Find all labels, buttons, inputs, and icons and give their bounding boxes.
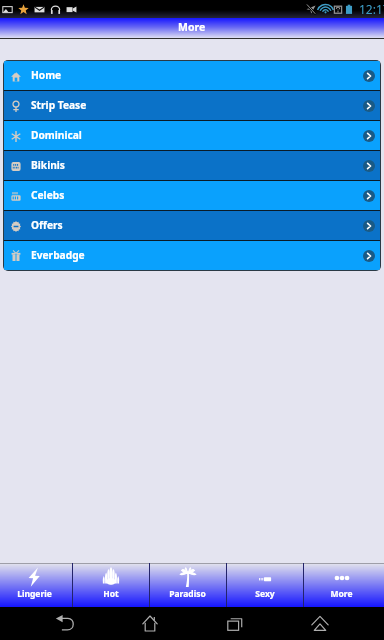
staticText: More	[178, 20, 206, 34]
button[interactable]: Offers	[4, 211, 380, 241]
button[interactable]: Lingerie	[0, 563, 72, 607]
button[interactable]: Sexy	[226, 563, 303, 607]
button[interactable]: Home	[107, 607, 192, 640]
other: Open Everbadge	[363, 250, 375, 262]
button[interactable]: Strip Tease	[4, 91, 380, 121]
staticText: Hot	[103, 588, 119, 600]
staticText: Sexy	[255, 588, 275, 600]
button[interactable]: Home	[4, 61, 380, 91]
staticText: Dominical	[31, 128, 82, 142]
staticText: Everbadge	[31, 248, 85, 262]
staticText: Offers	[31, 218, 63, 232]
other: Open Celebs	[363, 190, 375, 202]
staticText: More	[330, 588, 353, 600]
staticText: Paradiso	[169, 588, 206, 600]
button[interactable]: Everbadge	[4, 241, 380, 270]
staticText: Home	[31, 68, 62, 82]
staticText: Bikinis	[31, 158, 65, 172]
staticText: Strip Tease	[31, 98, 87, 112]
button[interactable]: Paradiso	[149, 563, 226, 607]
other: Open Dominical	[363, 130, 375, 142]
button[interactable]: Dominical	[4, 121, 380, 151]
button[interactable]: More	[303, 563, 380, 607]
staticText: 12:17	[359, 1, 384, 17]
button[interactable]: Recent apps	[192, 607, 277, 640]
button[interactable]: Bikinis	[4, 151, 380, 181]
button[interactable]: Celebs	[4, 181, 380, 211]
other: Open Home	[363, 70, 375, 82]
button[interactable]: Hide keyboard	[277, 607, 362, 640]
other: Open Offers	[363, 220, 375, 232]
button[interactable]: Hot	[72, 563, 149, 607]
other: Open Bikinis	[363, 160, 375, 172]
button[interactable]: Back	[22, 607, 107, 640]
staticText: Lingerie	[17, 588, 52, 600]
other: Open Strip Tease	[363, 100, 375, 112]
staticText: Celebs	[31, 188, 65, 202]
